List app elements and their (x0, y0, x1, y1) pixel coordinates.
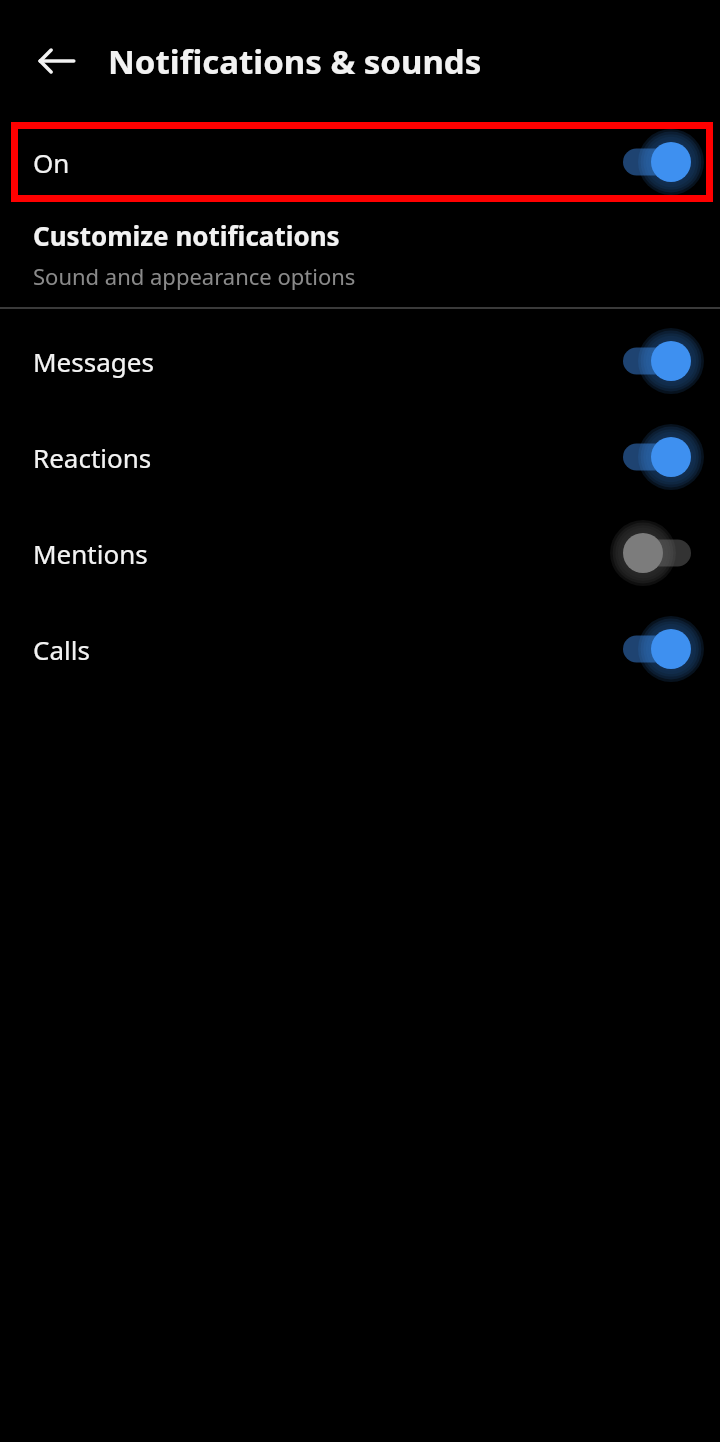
staticText: Sound and appearance options (33, 261, 356, 291)
staticText: On (33, 145, 70, 180)
staticText: Reactions (33, 440, 623, 475)
button[interactable]: On (11, 122, 713, 202)
staticText: Mentions (33, 536, 623, 571)
button[interactable]: On (623, 435, 691, 479)
button[interactable]: Messages (0, 313, 720, 409)
staticText: Calls (33, 632, 623, 667)
staticText: Messages (33, 344, 623, 379)
button[interactable]: On (623, 627, 691, 671)
button[interactable]: On (623, 140, 691, 184)
button[interactable]: Reactions (0, 409, 720, 505)
staticText: Notifications & sounds (108, 39, 482, 84)
button[interactable]: Mentions (0, 505, 720, 601)
staticText: Customize notifications (33, 218, 340, 253)
button[interactable]: Back (22, 26, 92, 96)
button[interactable]: Off (623, 531, 691, 575)
button[interactable]: On (623, 339, 691, 383)
button[interactable]: Calls (0, 601, 720, 697)
button[interactable]: Customize notifications (0, 202, 720, 307)
